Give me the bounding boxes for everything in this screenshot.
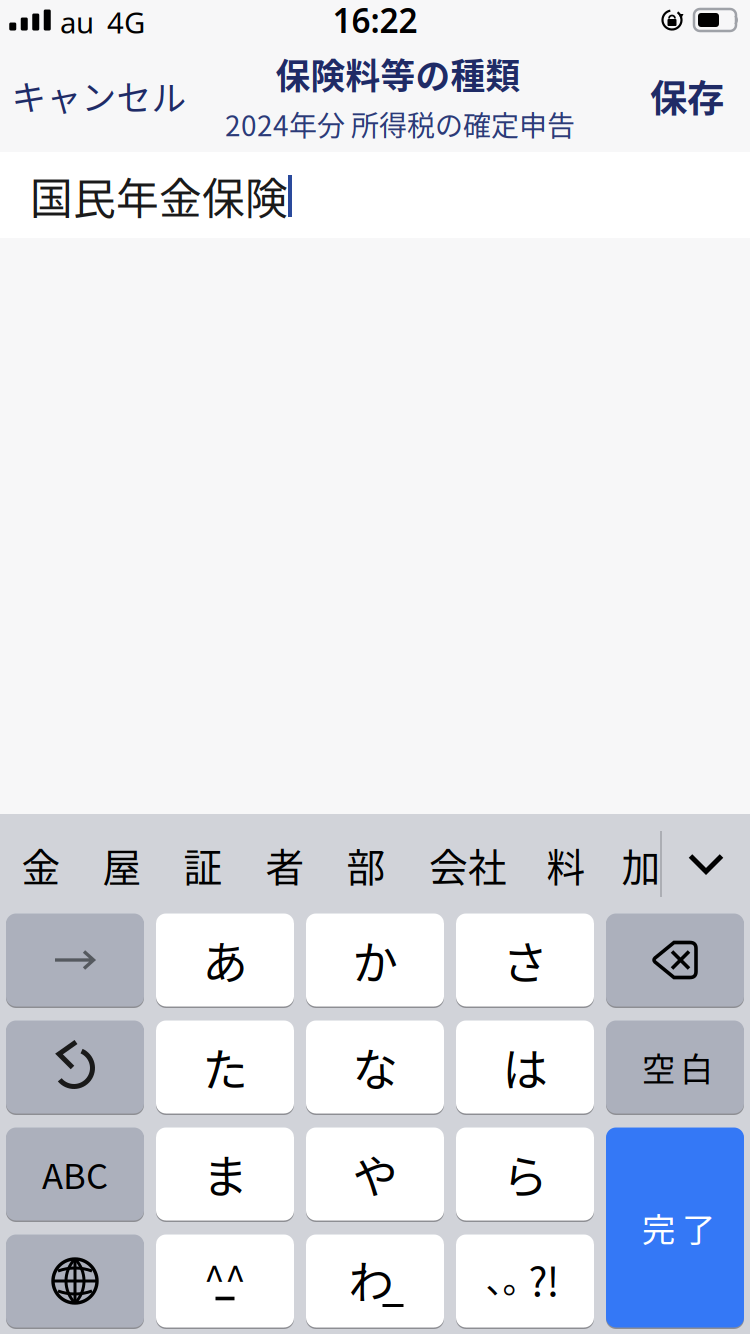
staticText: 会社 bbox=[429, 837, 507, 893]
button[interactable] bbox=[306, 1234, 444, 1327]
staticText: ! bbox=[546, 1249, 559, 1307]
button[interactable]: Delete bbox=[606, 913, 744, 1006]
staticText: 料 bbox=[546, 837, 585, 893]
button[interactable]: 会社 bbox=[419, 813, 517, 917]
button[interactable]: 部 bbox=[336, 813, 395, 917]
button[interactable] bbox=[456, 1127, 594, 1220]
button[interactable]: Next keyboard bbox=[6, 1234, 144, 1327]
button[interactable] bbox=[456, 1234, 594, 1327]
button[interactable]: 加 bbox=[611, 813, 670, 917]
staticText: au bbox=[60, 2, 94, 41]
staticText: 証 bbox=[183, 837, 222, 893]
staticText: キャンセル bbox=[11, 71, 186, 121]
staticText: 保存 bbox=[650, 69, 724, 123]
staticText: 部 bbox=[346, 837, 385, 893]
staticText: ま bbox=[202, 1141, 247, 1207]
staticText: か bbox=[352, 927, 397, 993]
button[interactable] bbox=[306, 913, 444, 1006]
staticText: ^^ bbox=[204, 1250, 246, 1305]
staticText: 。 bbox=[502, 1253, 537, 1304]
staticText: は bbox=[502, 1034, 547, 1100]
staticText: わ bbox=[348, 1247, 393, 1312]
staticText: 空白 bbox=[642, 1043, 713, 1091]
staticText: ら bbox=[502, 1141, 547, 1207]
button[interactable] bbox=[606, 1020, 744, 1113]
button[interactable] bbox=[156, 1127, 294, 1220]
staticText: さ bbox=[502, 927, 547, 993]
button[interactable]: 証 bbox=[173, 813, 232, 917]
button[interactable] bbox=[306, 1127, 444, 1220]
button[interactable] bbox=[6, 1127, 144, 1220]
button[interactable]: Hide keyboard bbox=[668, 829, 744, 898]
staticText: や bbox=[352, 1141, 397, 1207]
button[interactable]: 料 bbox=[536, 813, 595, 917]
button[interactable] bbox=[156, 1020, 294, 1113]
staticText: 保険料等の種類 bbox=[275, 49, 520, 99]
staticText: 4G bbox=[107, 2, 145, 41]
staticText: 者 bbox=[265, 837, 304, 893]
button[interactable] bbox=[606, 1127, 744, 1327]
button[interactable]: キャンセル bbox=[0, 57, 202, 135]
button[interactable] bbox=[306, 1020, 444, 1113]
button[interactable] bbox=[156, 913, 294, 1006]
staticText: な bbox=[352, 1034, 397, 1100]
button[interactable] bbox=[156, 1234, 294, 1327]
staticText: 16:22 bbox=[332, 0, 417, 42]
staticText: 加 bbox=[621, 837, 660, 893]
button[interactable]: 保存 bbox=[632, 55, 742, 137]
button[interactable]: 者 bbox=[255, 813, 314, 917]
staticText: ABC bbox=[42, 1149, 108, 1199]
staticText: 2024年分 所得税の確定申告 bbox=[225, 104, 575, 144]
button[interactable] bbox=[456, 1020, 594, 1113]
button[interactable]: Next candidate bbox=[6, 913, 144, 1006]
staticText: た bbox=[202, 1034, 247, 1100]
button[interactable] bbox=[456, 913, 594, 1006]
staticText: ? bbox=[528, 1249, 547, 1307]
staticText: 完了 bbox=[642, 1203, 715, 1252]
staticText: 、 bbox=[485, 1253, 520, 1304]
staticText: 国民年金保険 bbox=[30, 165, 288, 227]
staticText: あ bbox=[202, 927, 247, 993]
button[interactable]: Undo bbox=[6, 1020, 144, 1113]
button[interactable]: 金 bbox=[11, 813, 70, 917]
staticText: 屋 bbox=[102, 837, 141, 893]
staticText: 金 bbox=[21, 837, 60, 893]
button[interactable]: 屋 bbox=[92, 813, 151, 917]
